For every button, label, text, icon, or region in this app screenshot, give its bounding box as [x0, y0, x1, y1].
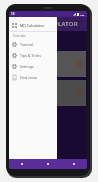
- staticText: MD Calculator: [20, 23, 45, 28]
- staticText: Tutorial: [20, 42, 33, 47]
- staticText: 15: [11, 12, 15, 16]
- button[interactable]: Recents: [61, 159, 87, 169]
- button[interactable]: Find more photographic apps: [9, 72, 57, 83]
- staticText: Tips & Tricks: [20, 53, 41, 58]
- staticText: Settings: [20, 64, 34, 69]
- staticText: MD CALCULATOR: [25, 20, 78, 28]
- button[interactable]: Tips & Tricks: [9, 50, 57, 61]
- staticText: Tutorials: [13, 34, 26, 38]
- button[interactable]: Tutorial: [9, 39, 57, 50]
- button[interactable]: [10, 80, 86, 106]
- button[interactable]: Open navigation drawer: [11, 20, 19, 28]
- button[interactable]: MD Calculator: [9, 20, 57, 31]
- button[interactable]: Home: [35, 159, 61, 169]
- staticText: Search here: [11, 35, 28, 39]
- button[interactable]: [10, 51, 86, 77]
- button[interactable]: Back: [9, 159, 35, 169]
- button[interactable]: Settings: [9, 61, 57, 72]
- staticText: Find more photographic apps: [20, 75, 57, 80]
- staticText: 100: [80, 13, 85, 16]
